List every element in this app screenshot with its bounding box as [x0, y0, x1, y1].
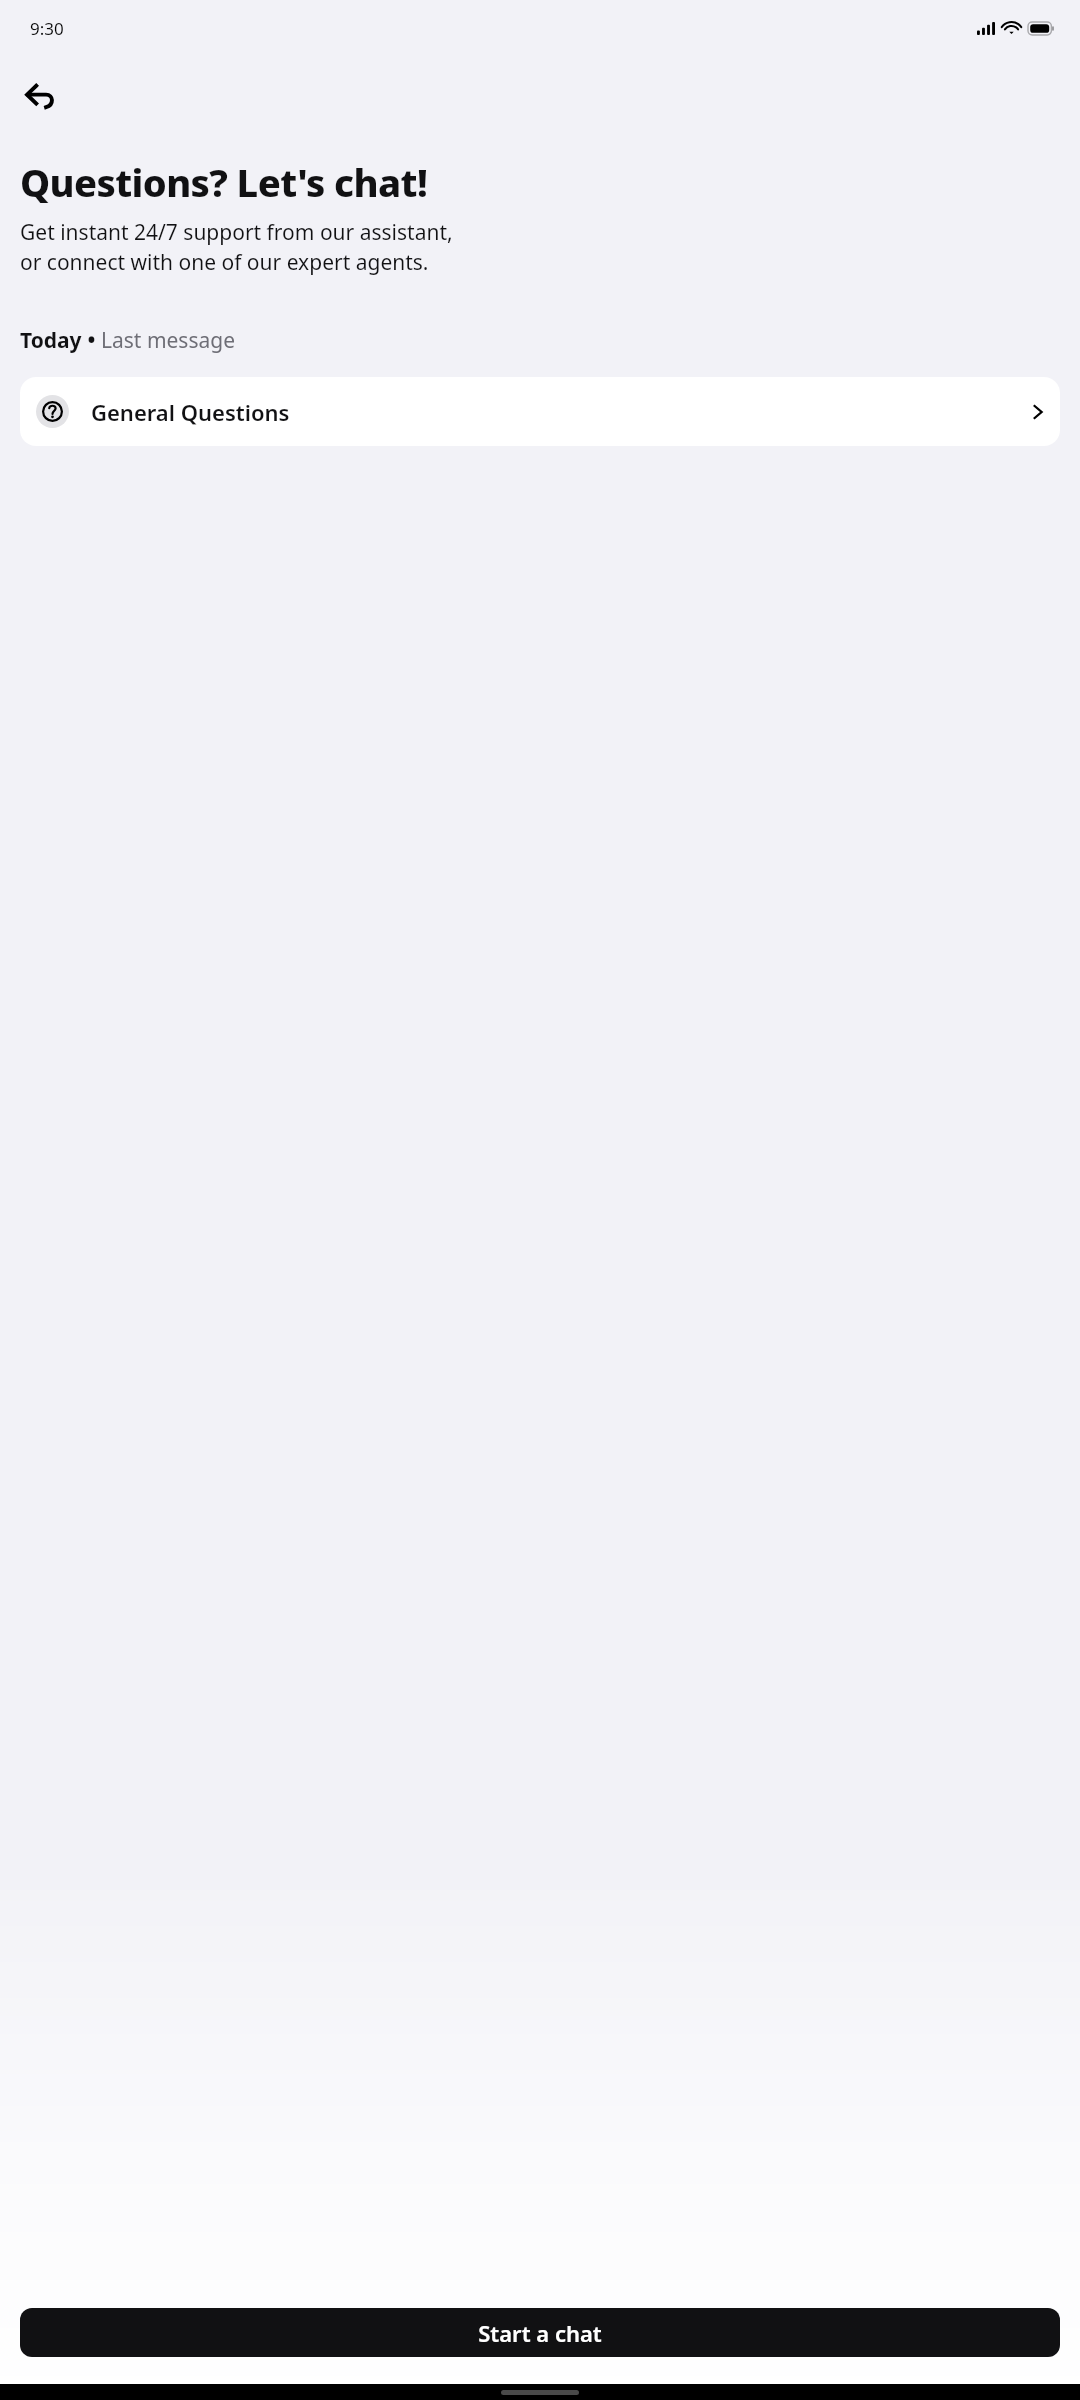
staticText: Today [20, 326, 82, 355]
staticText: Last message [101, 326, 236, 355]
staticText: 9:30 [30, 17, 64, 40]
staticText: Questions? Let's chat! [20, 156, 428, 208]
button[interactable]: Back [14, 68, 70, 124]
staticText: Get instant 24/7 support from our assist… [20, 218, 453, 276]
button[interactable]: General Questions [20, 377, 1060, 446]
staticText: General Questions [91, 397, 290, 427]
staticText: • [82, 326, 101, 355]
staticText: Start a chat [478, 2318, 602, 2348]
button[interactable]: Start a chat [20, 2308, 1060, 2357]
